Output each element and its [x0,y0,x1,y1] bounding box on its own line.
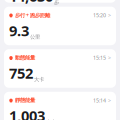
staticText: 步 [54,0,59,6]
staticText: 靜態能量 [15,97,35,104]
button[interactable]: 靜態能量 [4,92,116,120]
button[interactable]: 步數 [4,0,116,3]
staticText: 動態能量 [15,54,35,61]
staticText: 公里 [30,34,40,40]
staticText: 大卡 [46,119,56,120]
staticText: 9.3 [9,21,29,40]
staticText: 大卡 [34,76,44,83]
staticText: 15:14 [93,97,106,104]
staticText: 15:15 [93,54,106,61]
staticText: 步行 + 跑步距離 [15,12,50,19]
button[interactable]: 動態能量 [4,49,116,88]
staticText: 14,630 [9,0,53,6]
staticText: > [108,97,111,104]
staticText: > [108,54,111,61]
staticText: 1,003 [9,106,45,120]
button[interactable]: 步行 + 跑步距離 [4,7,116,45]
staticText: 752 [9,63,33,83]
staticText: > [108,12,111,19]
staticText: 15:20 [93,12,106,19]
